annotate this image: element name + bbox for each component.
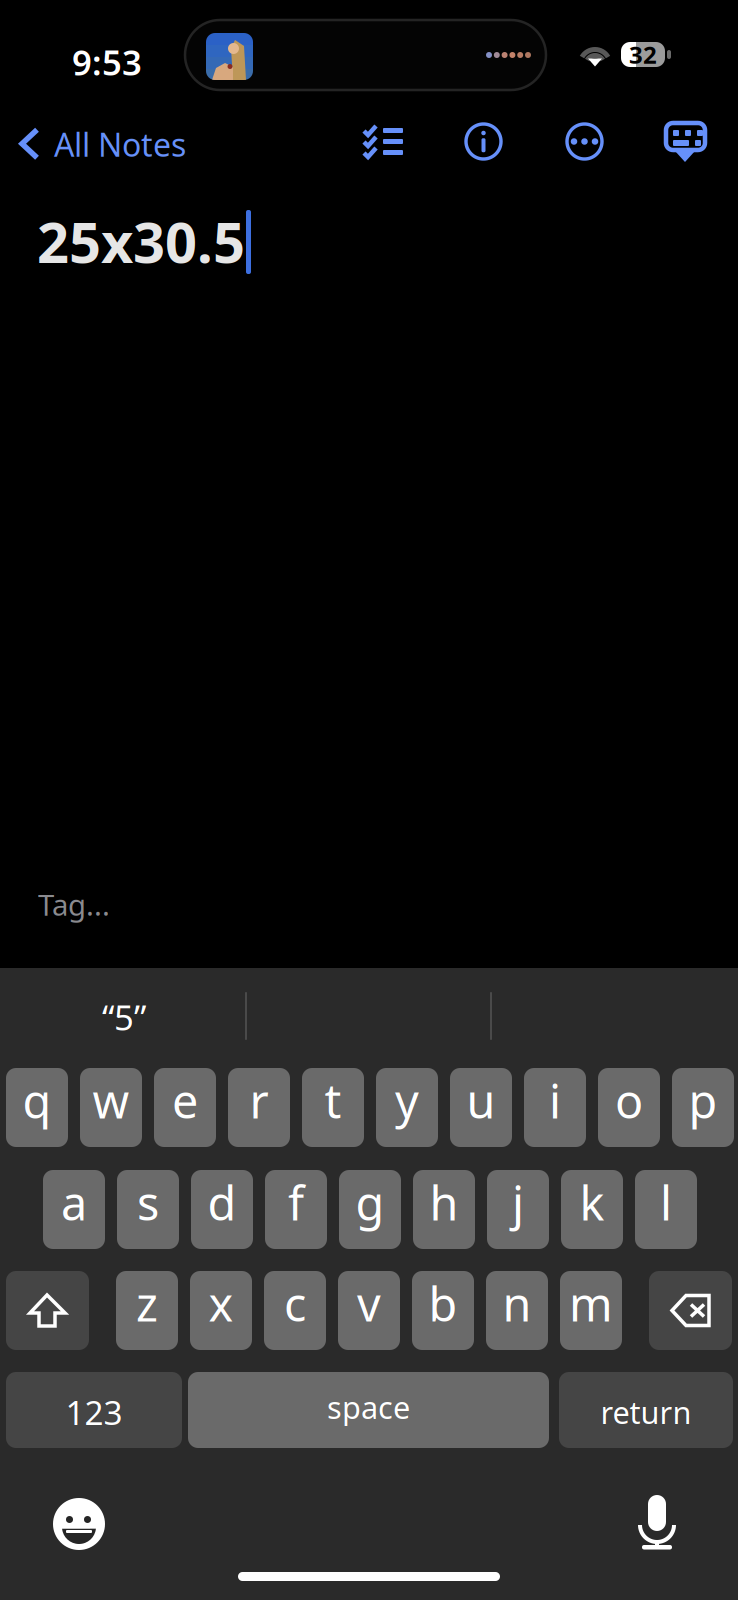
button[interactable]: b: [412, 1271, 474, 1350]
button[interactable]: w: [80, 1068, 142, 1147]
button[interactable]: y: [376, 1068, 438, 1147]
staticText: i: [549, 1069, 561, 1131]
staticText: j: [512, 1171, 524, 1233]
button[interactable]: r: [228, 1068, 290, 1147]
staticText: 25x30.5: [37, 204, 245, 278]
staticText: return: [600, 1392, 691, 1432]
staticText: 32: [629, 39, 657, 70]
button[interactable]: Hide Keyboard: [663, 119, 708, 164]
button[interactable]: p: [672, 1068, 734, 1147]
staticText: space: [327, 1387, 410, 1427]
staticText: p: [688, 1069, 717, 1131]
button[interactable]: k: [561, 1170, 623, 1249]
staticText: 9:53: [72, 39, 142, 85]
button[interactable]: x: [190, 1271, 252, 1350]
staticText: c: [284, 1272, 306, 1334]
button[interactable]: Checklist: [359, 119, 404, 164]
staticText: 123: [65, 1390, 122, 1434]
button[interactable]: s: [117, 1170, 179, 1249]
button[interactable]: c: [264, 1271, 326, 1350]
button[interactable]: j: [487, 1170, 549, 1249]
button[interactable]: v: [338, 1271, 400, 1350]
staticText: w: [92, 1069, 129, 1131]
button[interactable]: g: [339, 1170, 401, 1249]
button[interactable]: n: [486, 1271, 548, 1350]
staticText: k: [579, 1171, 604, 1233]
staticText: a: [61, 1171, 87, 1233]
staticText: h: [429, 1171, 458, 1233]
button[interactable]: 123: [6, 1372, 182, 1448]
button[interactable]: Emoji: [53, 1498, 105, 1550]
staticText: r: [249, 1069, 268, 1131]
staticText: z: [136, 1272, 158, 1334]
button[interactable]: h: [413, 1170, 475, 1249]
staticText: t: [324, 1069, 341, 1131]
button[interactable]: d: [191, 1170, 253, 1249]
staticText: q: [22, 1069, 51, 1131]
button[interactable]: o: [598, 1068, 660, 1147]
button[interactable]: f: [265, 1170, 327, 1249]
button[interactable]: “5”: [102, 994, 146, 1040]
staticText: f: [288, 1171, 304, 1233]
staticText: All Notes: [54, 123, 186, 165]
staticText: Tag...: [38, 885, 110, 924]
staticText: “5”: [102, 994, 146, 1040]
button[interactable]: q: [6, 1068, 68, 1147]
button[interactable]: u: [450, 1068, 512, 1147]
button[interactable]: Delete: [649, 1271, 732, 1350]
staticText: v: [357, 1272, 381, 1334]
button[interactable]: e: [154, 1068, 216, 1147]
button[interactable]: return: [559, 1372, 733, 1448]
button[interactable]: Info: [461, 119, 506, 164]
staticText: n: [502, 1272, 531, 1334]
staticText: d: [207, 1171, 236, 1233]
staticText: s: [137, 1171, 159, 1233]
button[interactable]: l: [635, 1170, 697, 1249]
button[interactable]: space: [188, 1372, 549, 1448]
button[interactable]: Dictation: [637, 1495, 677, 1551]
staticText: b: [428, 1272, 457, 1334]
button[interactable]: a: [43, 1170, 105, 1249]
staticText: e: [172, 1069, 198, 1131]
staticText: y: [395, 1069, 419, 1131]
staticText: x: [208, 1272, 233, 1334]
staticText: u: [466, 1069, 495, 1131]
button[interactable]: i: [524, 1068, 586, 1147]
button[interactable]: More: [562, 119, 607, 164]
button[interactable]: z: [116, 1271, 178, 1350]
staticText: o: [615, 1069, 643, 1131]
button[interactable]: t: [302, 1068, 364, 1147]
staticText: l: [660, 1171, 672, 1233]
staticText: m: [569, 1272, 613, 1334]
staticText: g: [355, 1171, 384, 1233]
button[interactable]: All Notes: [10, 118, 194, 170]
button[interactable]: m: [560, 1271, 622, 1350]
button[interactable]: Shift: [6, 1271, 89, 1350]
